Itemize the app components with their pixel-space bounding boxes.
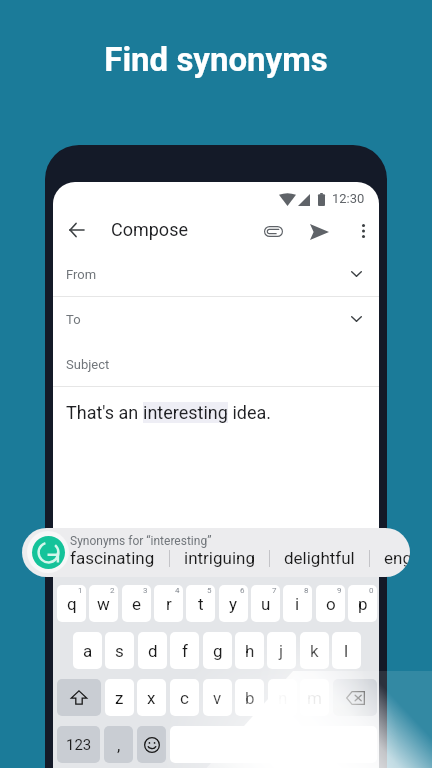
staticText: b: [245, 688, 255, 708]
staticText: 12:30: [332, 191, 365, 206]
button[interactable]: Send: [303, 215, 336, 248]
staticText: z: [115, 688, 124, 708]
staticText: ,: [117, 735, 121, 755]
button[interactable]: d: [138, 632, 167, 669]
button[interactable]: r: [154, 585, 183, 622]
staticText: eng: [384, 548, 410, 568]
staticText: o: [326, 594, 336, 614]
button[interactable]: g: [203, 632, 232, 669]
button[interactable]: t: [186, 585, 215, 622]
button[interactable]: Shift: [57, 679, 101, 716]
staticText: u: [261, 594, 271, 614]
button[interactable]: a: [73, 632, 102, 669]
staticText: 3: [143, 586, 148, 595]
button[interactable]: Subject: [53, 342, 379, 386]
staticText: That's an: [66, 402, 143, 423]
staticText: p: [358, 594, 368, 614]
button[interactable]: v: [203, 679, 232, 716]
button[interactable]: Synonyms for “interesting”: [22, 528, 410, 577]
staticText: w: [97, 594, 110, 614]
button[interactable]: m: [300, 679, 329, 716]
button[interactable]: Backspace: [333, 679, 377, 716]
button[interactable]: b: [235, 679, 264, 716]
staticText: l: [344, 641, 349, 661]
staticText: v: [213, 688, 222, 708]
button[interactable]: Emoji: [137, 726, 166, 763]
staticText: 5: [207, 586, 212, 595]
button[interactable]: Back: [60, 214, 92, 246]
staticText: 7: [272, 586, 277, 595]
button[interactable]: q: [57, 585, 86, 622]
staticText: Subject: [66, 357, 110, 372]
button[interactable]: l: [332, 632, 361, 669]
staticText: y: [229, 594, 238, 614]
button[interactable]: To: [53, 297, 379, 341]
button[interactable]: 123: [57, 726, 100, 763]
staticText: f: [182, 641, 188, 661]
staticText: To: [66, 312, 81, 327]
staticText: Synonyms for “interesting”: [70, 534, 212, 548]
staticText: 123: [66, 736, 92, 754]
button[interactable]: z: [105, 679, 134, 716]
staticText: Find synonyms: [0, 40, 432, 79]
staticText: 8: [304, 586, 309, 595]
staticText: idea.: [228, 402, 272, 423]
button[interactable]: f: [170, 632, 199, 669]
staticText: j: [279, 641, 284, 661]
button[interactable]: o: [316, 585, 345, 622]
staticText: i: [295, 594, 300, 614]
staticText: a: [83, 641, 93, 661]
staticText: q: [67, 594, 77, 614]
button[interactable]: i: [283, 585, 312, 622]
button[interactable]: y: [219, 585, 248, 622]
button[interactable]: e: [122, 585, 151, 622]
staticText: h: [245, 641, 255, 661]
button[interactable]: w: [89, 585, 118, 622]
staticText: 1: [78, 586, 83, 595]
staticText: d: [148, 641, 158, 661]
button[interactable]: ,: [104, 726, 133, 763]
button[interactable]: p: [348, 585, 377, 622]
button[interactable]: delightful: [284, 548, 355, 568]
button[interactable]: x: [137, 679, 166, 716]
staticText: g: [213, 641, 223, 661]
staticText: e: [132, 594, 142, 614]
staticText: s: [115, 641, 124, 661]
button[interactable]: k: [300, 632, 329, 669]
button[interactable]: intriguing: [184, 548, 255, 568]
button[interactable]: c: [170, 679, 199, 716]
staticText: r: [166, 594, 172, 614]
staticText: x: [147, 688, 156, 708]
staticText: From: [66, 267, 97, 282]
staticText: t: [198, 594, 204, 614]
button[interactable]: s: [105, 632, 134, 669]
button[interactable]: fascinating: [70, 548, 155, 568]
staticText: 9: [337, 586, 342, 595]
button[interactable]: More options: [347, 215, 379, 247]
button[interactable]: h: [235, 632, 264, 669]
staticText: 4: [175, 586, 180, 595]
button[interactable]: u: [251, 585, 280, 622]
staticText: k: [310, 641, 319, 661]
staticText: 0: [369, 586, 374, 595]
button[interactable]: Attach file: [257, 215, 290, 248]
staticText: m: [307, 688, 322, 708]
button[interactable]: From: [53, 252, 379, 296]
staticText: c: [180, 688, 189, 708]
staticText: interesting: [143, 402, 228, 423]
staticText: 6: [240, 586, 245, 595]
button[interactable]: j: [267, 632, 296, 669]
staticText: Compose: [111, 219, 188, 240]
staticText: 2: [110, 586, 115, 595]
